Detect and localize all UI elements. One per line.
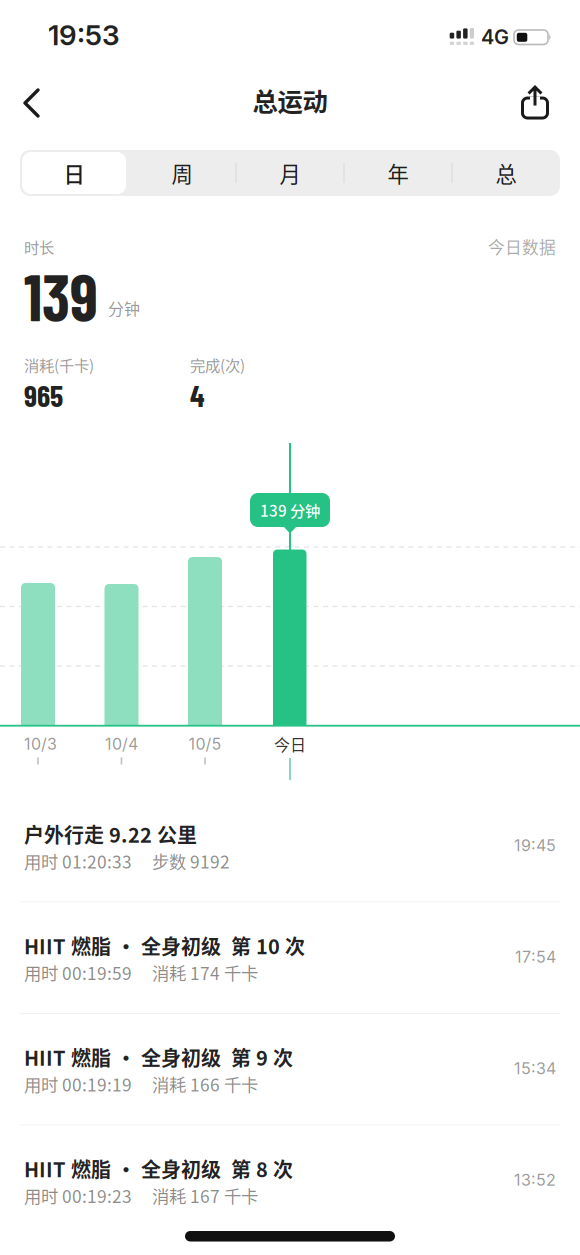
staticText: HIIT 燃脂 · 全身初级 第 8 次 — [24, 1154, 293, 1183]
button[interactable]: 户外行走 9.22 公里 — [0, 791, 580, 902]
button[interactable]: HIIT 燃脂 · 全身初级 第 9 次 — [0, 1014, 580, 1125]
staticText: 用时 00:19:59 消耗 174 千卡 — [24, 960, 258, 985]
staticText: 用时 00:19:19 消耗 166 千卡 — [24, 1071, 258, 1097]
staticText: 10/4 — [105, 734, 138, 754]
staticText: 15:34 — [514, 1059, 556, 1078]
staticText: 4 — [190, 377, 205, 413]
staticText: 用时 00:19:23 消耗 167 千卡 — [24, 1183, 258, 1208]
staticText: 分钟 — [108, 296, 140, 320]
staticText: 年 — [387, 158, 408, 188]
button[interactable]: 年 — [0, 0, 108, 46]
staticText: 17:54 — [515, 947, 556, 967]
button[interactable]: 周 — [0, 0, 108, 46]
staticText: 周 — [171, 158, 192, 188]
staticText: 139 分钟 — [260, 499, 320, 521]
staticText: 965 — [24, 377, 63, 413]
staticText: 时长 — [24, 235, 54, 258]
staticText: 19:53 — [48, 18, 120, 52]
button[interactable]: 日 — [0, 0, 108, 46]
button[interactable]: HIIT 燃脂 · 全身初级 第 10 次 — [0, 902, 580, 1014]
staticText: 4G — [481, 25, 509, 49]
staticText: 总 — [495, 158, 516, 188]
staticText: 完成(次) — [190, 353, 245, 376]
button[interactable]: HIIT 燃脂 · 全身初级 第 8 次 — [0, 1125, 580, 1237]
staticText: 今日 — [274, 732, 306, 756]
staticText: HIIT 燃脂 · 全身初级 第 10 次 — [24, 931, 305, 960]
staticText: 10/3 — [24, 734, 57, 754]
staticText: 户外行走 9.22 公里 — [24, 819, 197, 848]
button[interactable]: 总 — [0, 0, 108, 46]
staticText: HIIT 燃脂 · 全身初级 第 9 次 — [24, 1042, 293, 1071]
staticText: 139 — [24, 257, 98, 334]
staticText: 消耗(千卡) — [24, 353, 94, 376]
staticText: 总运动 — [252, 82, 327, 118]
button[interactable]: 月 — [0, 0, 108, 46]
staticText: 19:45 — [514, 836, 556, 855]
staticText: 13:52 — [514, 1170, 556, 1190]
staticText: 今日数据 — [488, 234, 556, 258]
staticText: 用时 01:20:33 步数 9192 — [24, 848, 230, 874]
staticText: 月 — [279, 158, 300, 188]
staticText: 10/5 — [188, 734, 221, 754]
staticText: 日 — [63, 158, 84, 188]
